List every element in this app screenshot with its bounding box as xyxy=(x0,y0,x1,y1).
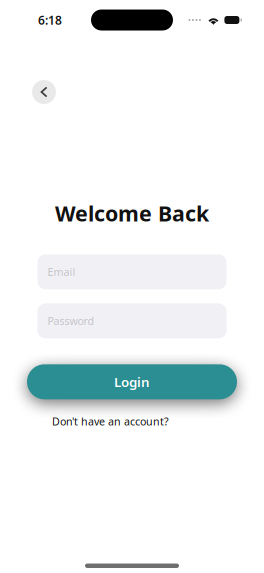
button[interactable]: Password xyxy=(37,303,226,338)
button[interactable]: Login xyxy=(27,364,237,399)
staticText: 6:18 xyxy=(38,12,62,28)
staticText: Password xyxy=(47,314,94,328)
staticText: Email xyxy=(47,265,75,279)
staticText: Welcome Back xyxy=(55,199,209,227)
staticText: Login xyxy=(114,373,150,391)
staticText: Don't have an account? xyxy=(52,414,169,428)
button[interactable]: Email xyxy=(37,254,226,289)
button[interactable]: Don't have an account? xyxy=(52,414,169,428)
button[interactable]: Back xyxy=(32,80,56,104)
